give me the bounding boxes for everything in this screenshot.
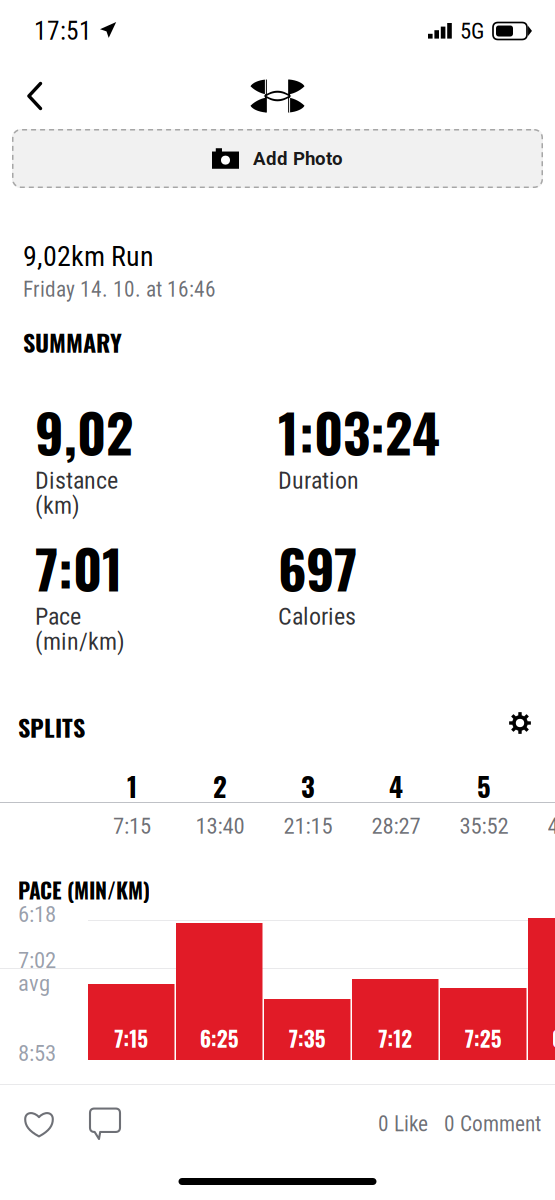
staticText: 1:03:24 [278, 392, 440, 471]
staticText: Friday 14. 10. at 16:46 [23, 277, 216, 302]
staticText: 9,02 [35, 392, 133, 471]
staticText: 1 [127, 766, 137, 806]
staticText: 8:53 [18, 1040, 56, 1067]
staticText: 0 Like [378, 1111, 428, 1136]
staticText: 35:52 [459, 813, 508, 839]
staticText: 3 [301, 766, 315, 806]
staticText: 21:15 [283, 813, 332, 839]
staticText: 2 [213, 766, 227, 806]
staticText: SUMMARY [23, 324, 122, 360]
button[interactable]: Under Armour [250, 79, 304, 112]
staticText: 7:15 [114, 1022, 148, 1054]
staticText: 7:01 [35, 528, 123, 607]
staticText: Calories [278, 602, 356, 630]
button[interactable]: Comment [82, 1101, 128, 1147]
staticText: SPLITS [18, 709, 85, 745]
staticText: Add Photo [253, 148, 343, 169]
staticText: 7:15 [113, 813, 151, 839]
staticText: avg [18, 970, 50, 997]
staticText: 7:12 [378, 1022, 412, 1054]
staticText: (min/km) [35, 627, 125, 655]
staticText: Duration [278, 466, 359, 494]
staticText: 5G [460, 18, 484, 44]
staticText: Distance [35, 466, 118, 494]
staticText: 7:35 [289, 1022, 326, 1054]
staticText: 6:55 [552, 1022, 555, 1054]
staticText: 7:02 [18, 947, 56, 974]
staticText: 0 Comment [444, 1111, 541, 1136]
staticText: (km) [35, 491, 80, 519]
staticText: 4 [389, 766, 403, 806]
staticText: 697 [278, 528, 357, 607]
button[interactable]: Split settings [500, 703, 540, 743]
staticText: Pace [35, 602, 81, 630]
button[interactable]: Like [16, 1101, 62, 1147]
staticText: 7:25 [465, 1022, 502, 1054]
staticText: PACE (MIN/KM) [18, 874, 150, 906]
staticText: 42:10 [547, 813, 555, 839]
staticText: 5 [477, 766, 491, 806]
staticText: 9,02km Run [23, 240, 154, 273]
staticText: 6:18 [18, 901, 56, 928]
button[interactable]: Back [12, 73, 58, 119]
staticText: 17:51 [34, 16, 92, 46]
staticText: 13:40 [195, 813, 244, 839]
staticText: 28:27 [371, 813, 420, 839]
button[interactable]: Add Photo [12, 129, 543, 188]
staticText: 6:25 [200, 1022, 239, 1054]
